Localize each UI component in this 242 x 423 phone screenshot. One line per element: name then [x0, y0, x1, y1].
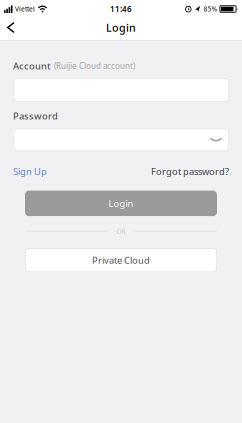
- staticText: Login: [108, 197, 133, 209]
- button[interactable]: Sign Up: [13, 165, 47, 178]
- button[interactable]: Account: [0, 78, 242, 102]
- staticText: 11:46: [110, 4, 132, 14]
- button[interactable]: Back: [0, 18, 15, 39]
- staticText: 85%: [203, 5, 217, 13]
- staticText: Login: [106, 20, 136, 35]
- staticText: OR: [116, 227, 125, 236]
- staticText: (Ruijie Cloud account): [54, 61, 135, 71]
- staticText: Sign Up: [13, 165, 47, 178]
- button[interactable]: Password: [0, 128, 242, 151]
- staticText: Password: [13, 110, 58, 122]
- staticText: Account: [13, 60, 51, 72]
- button[interactable]: Login: [0, 191, 242, 216]
- button[interactable]: Forgot password?: [151, 165, 229, 178]
- staticText: Viettel: [15, 5, 35, 13]
- staticText: Private Cloud: [92, 254, 150, 266]
- button[interactable]: Private Cloud: [0, 248, 242, 272]
- staticText: Forgot password?: [151, 165, 229, 178]
